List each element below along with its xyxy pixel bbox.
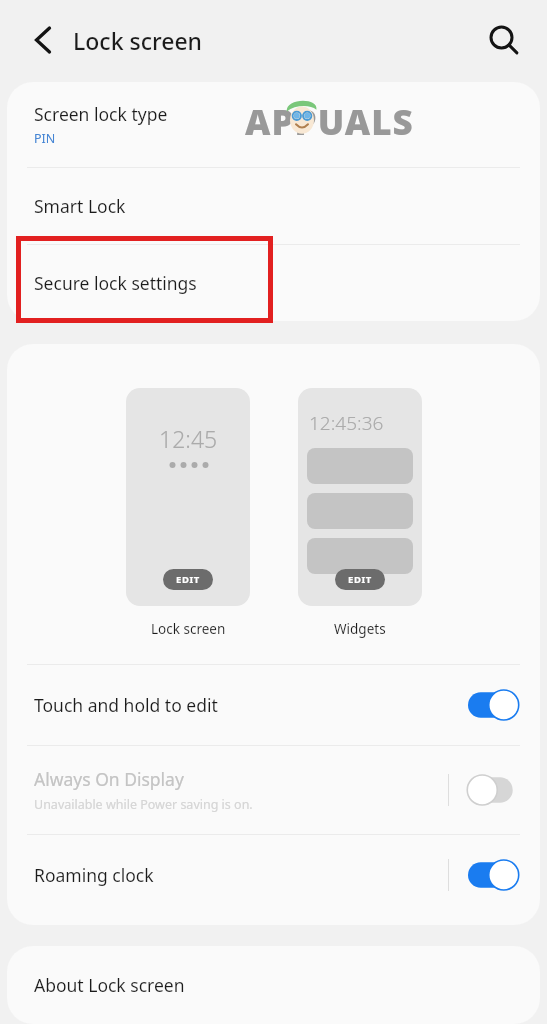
button[interactable]: Touch and hold to edit [7, 665, 540, 745]
staticText: 12:45 [159, 423, 218, 454]
staticText: APPUALS [245, 98, 414, 146]
staticText: Roaming clock [34, 863, 154, 887]
staticText: Screen lock type [34, 102, 168, 126]
button[interactable]: Back [17, 14, 69, 66]
staticText: PIN [34, 130, 56, 147]
staticText: Lock screen [151, 620, 226, 638]
button[interactable]: 12:45:36 [298, 388, 422, 606]
staticText: Secure lock settings [34, 271, 197, 295]
button[interactable]: Screen lock type [7, 82, 540, 167]
staticText: Touch and hold to edit [34, 693, 218, 717]
staticText: Unavailable while Power saving is on. [34, 796, 253, 813]
button[interactable]: 12:45 [126, 388, 250, 606]
button[interactable]: About Lock screen [7, 946, 540, 1024]
staticText: 12:45:36 [309, 410, 384, 436]
button[interactable]: EDIT [163, 569, 213, 590]
button[interactable]: Enabled [468, 689, 520, 721]
button[interactable]: EDIT [335, 569, 385, 590]
staticText: Smart Lock [34, 194, 126, 218]
button[interactable]: Enabled [468, 859, 520, 891]
staticText: EDIT [176, 573, 200, 586]
staticText: Widgets [334, 620, 386, 638]
button[interactable]: Search [478, 14, 530, 66]
staticText: Always On Display [34, 767, 184, 791]
button[interactable]: Secure lock settings [7, 245, 540, 321]
staticText: Lock screen [73, 25, 203, 56]
button[interactable]: Disabled [468, 774, 520, 806]
button[interactable]: Always On Display [7, 746, 540, 834]
button[interactable]: Roaming clock [7, 835, 540, 915]
staticText: About Lock screen [34, 973, 185, 997]
button[interactable]: Smart Lock [7, 168, 540, 244]
staticText: EDIT [348, 573, 372, 586]
